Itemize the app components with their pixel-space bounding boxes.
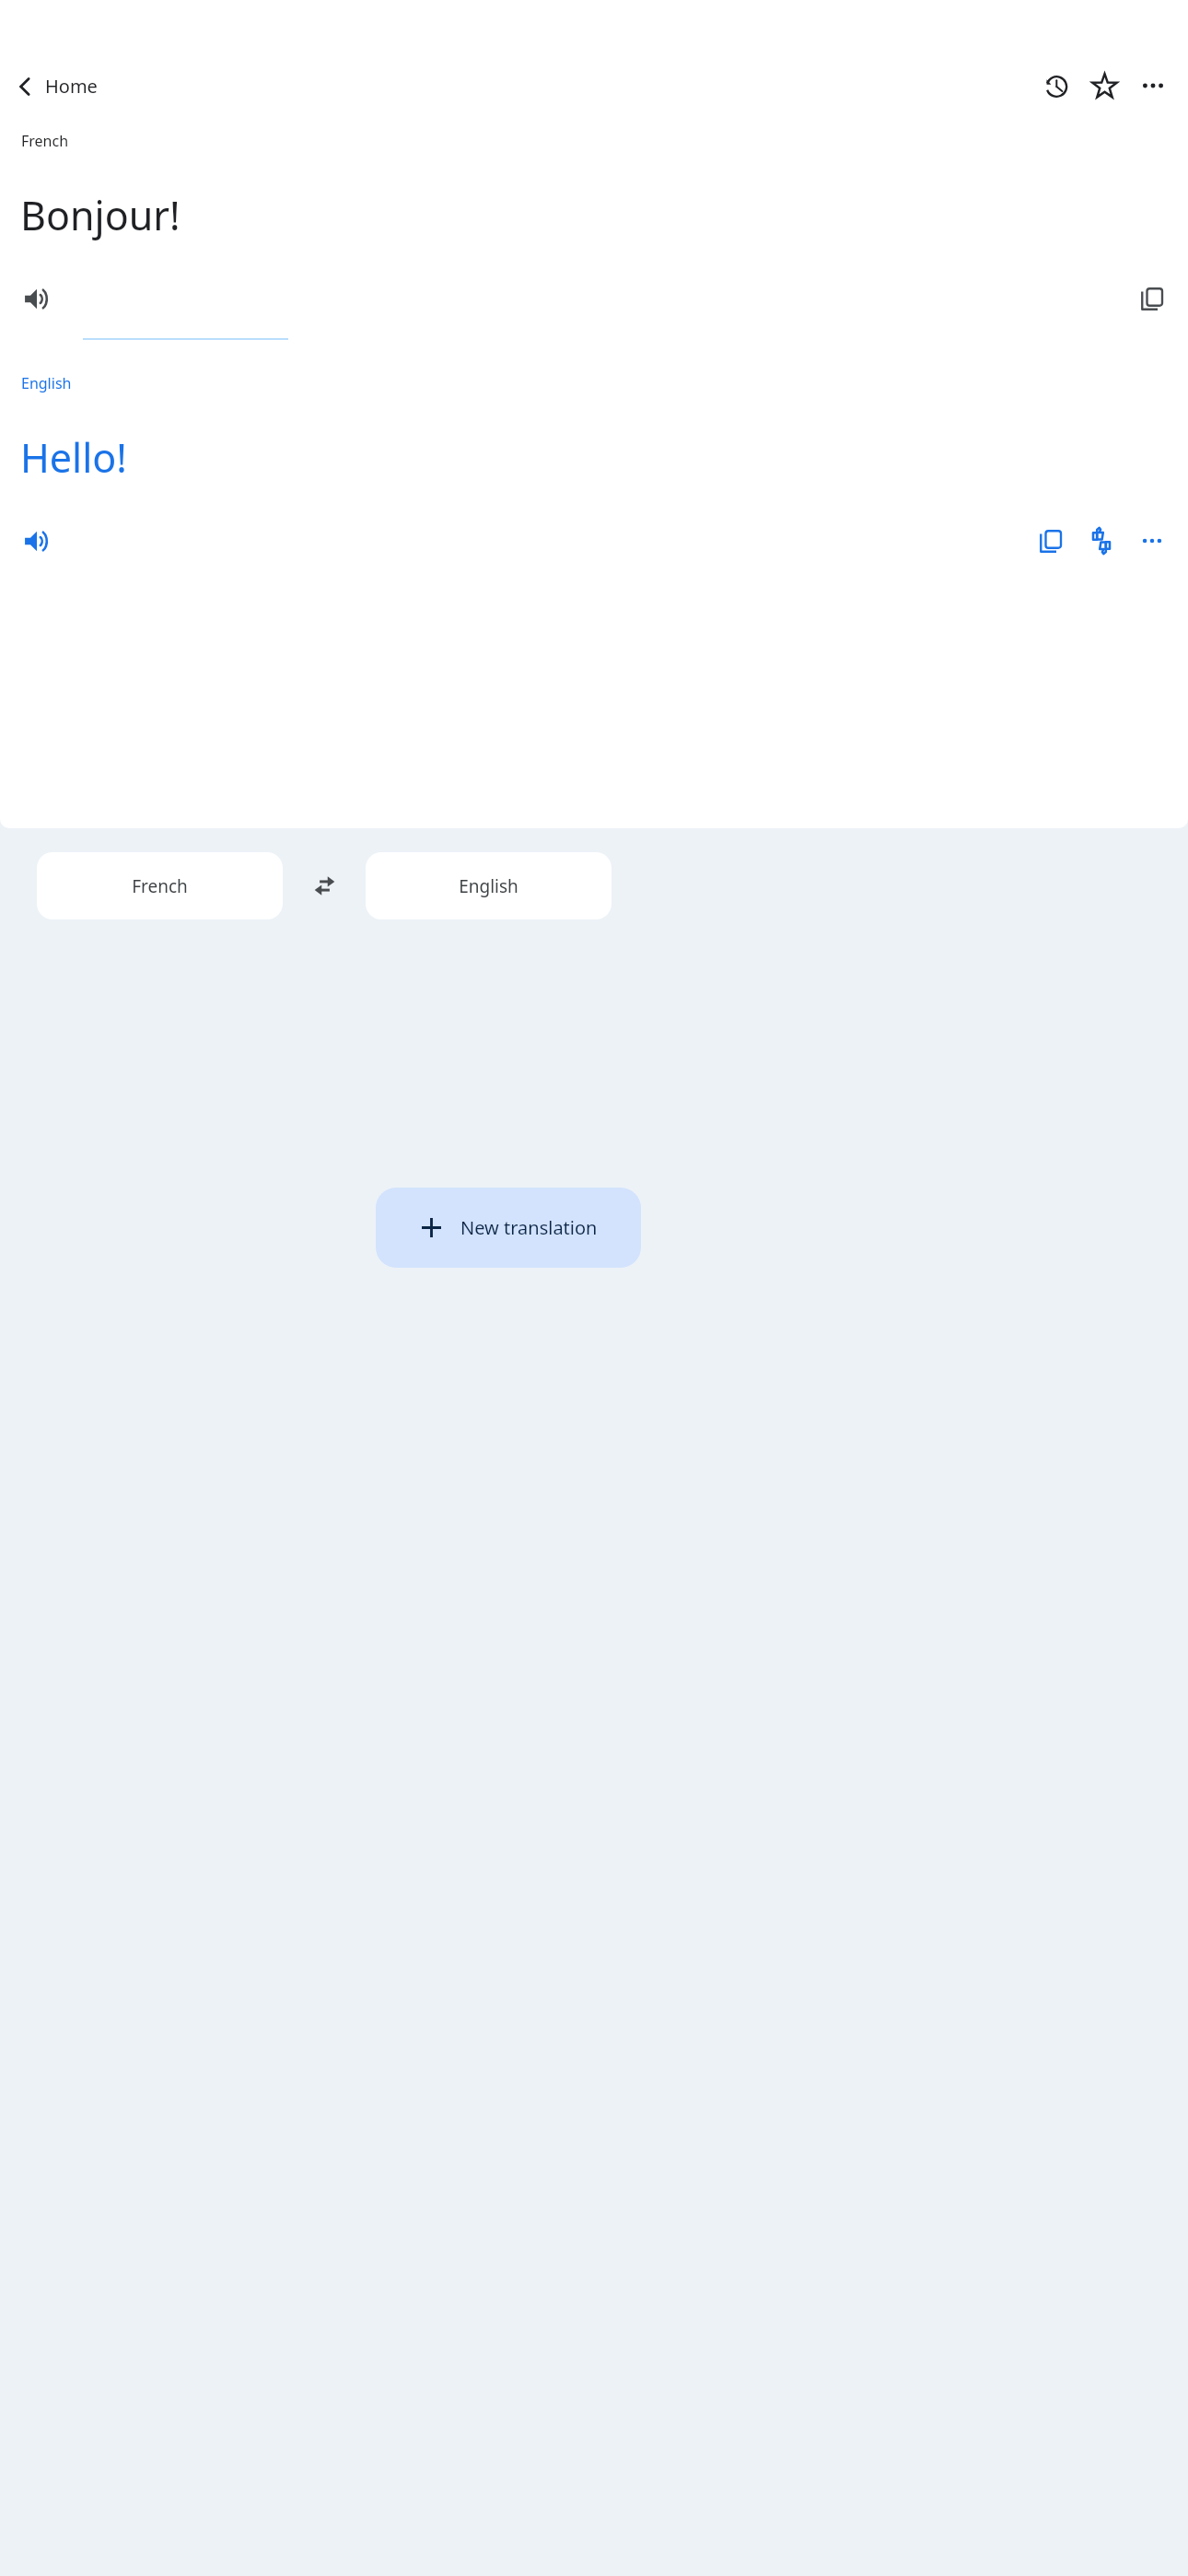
button[interactable]: More translation options <box>1129 518 1175 564</box>
button[interactable]: Listen to source text <box>13 275 59 322</box>
button[interactable]: New translation <box>376 1188 641 1268</box>
button[interactable]: Bonjour! <box>20 188 1168 242</box>
staticText: Home <box>45 74 98 99</box>
button[interactable]: Rate this translation <box>1078 518 1124 564</box>
button[interactable]: Hello! <box>20 430 1168 485</box>
button[interactable]: French <box>37 852 283 919</box>
button[interactable]: Copy source text <box>1129 275 1175 322</box>
button[interactable]: English <box>21 373 72 393</box>
staticText: Hello! <box>20 430 127 485</box>
staticText: French <box>132 874 188 898</box>
staticText: English <box>459 874 518 898</box>
staticText: Bonjour! <box>20 188 181 242</box>
staticText: English <box>21 373 72 393</box>
button[interactable]: French <box>21 131 69 151</box>
button[interactable]: Swap languages <box>283 852 366 919</box>
button[interactable]: Copy translation <box>1028 518 1074 564</box>
button[interactable]: Listen to translation <box>13 518 59 564</box>
button[interactable]: More options <box>1131 64 1175 108</box>
button[interactable]: English <box>366 852 611 919</box>
button[interactable]: History <box>1033 64 1077 108</box>
staticText: French <box>21 131 69 151</box>
button[interactable]: Save to favourites <box>1082 64 1126 108</box>
button[interactable]: Home <box>7 68 103 104</box>
staticText: New translation <box>460 1215 598 1240</box>
